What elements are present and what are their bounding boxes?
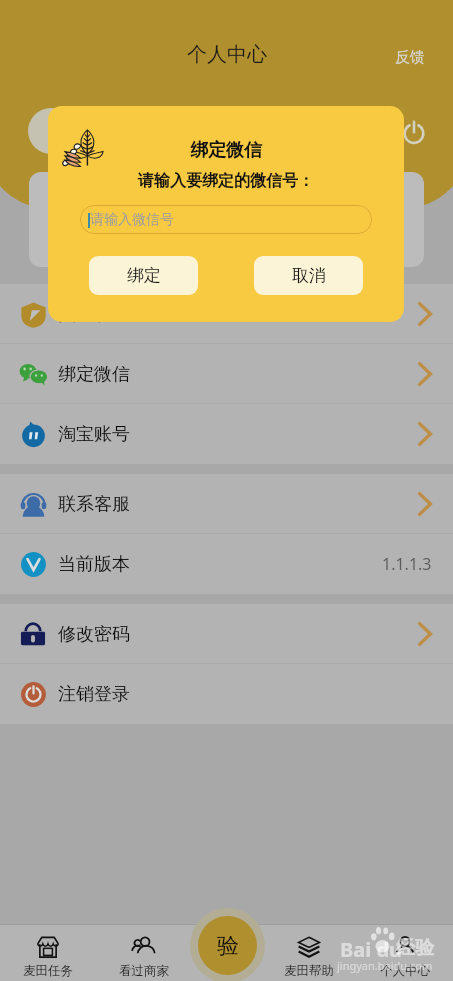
button[interactable]: 当前版本 [0,534,453,594]
button[interactable]: 请输入微信号 [80,205,372,234]
staticText: 修改密码 [58,623,130,646]
staticText: 验 [217,932,239,960]
button[interactable]: 注销登录 [0,664,453,724]
staticText: Bai du [340,936,403,963]
staticText: 绑定微信 [190,139,262,162]
staticText: 个人中心 [187,42,267,67]
button[interactable]: 淘宝账号 [0,404,453,464]
staticText: 请输入要绑定的微信号： [138,171,314,191]
button[interactable]: 联系客服 [0,474,453,534]
button[interactable]: 修改密码 [0,604,453,664]
staticText: 经验 [396,936,434,960]
button[interactable]: 看过商家 [96,924,192,981]
staticText: 麦田任务 [23,963,73,979]
staticText: 看过商家 [119,963,169,979]
staticText: 1.1.1.3 [382,553,432,575]
staticText: 当前版本 [58,553,130,576]
button[interactable]: 实名认证 [0,284,453,344]
staticText: 个人中心 [380,963,430,979]
staticText: 反馈 [395,48,425,67]
button[interactable]: Logout [401,120,427,146]
staticText: 请输入微信号 [90,211,174,229]
staticText: 联系客服 [58,493,130,516]
staticText: jingyan.baidu.com [337,958,433,973]
staticText: 取消 [292,265,326,286]
staticText: 麦田帮助 [284,963,334,979]
button[interactable]: 验 Verify [190,908,265,981]
button[interactable]: 个人中心 [357,924,453,981]
button[interactable]: 绑定 [89,256,198,295]
staticText: 绑定微信 [58,363,130,386]
button[interactable]: 麦田任务 [0,924,96,981]
staticText: 淘宝账号 [58,423,130,446]
staticText: 注销登录 [58,683,130,706]
button[interactable]: 反馈 [395,48,425,67]
staticText: 实名认证 [58,303,130,326]
button[interactable]: Avatar [28,108,74,154]
button[interactable]: 麦田帮助 [261,924,357,981]
staticText: 绑定 [127,265,161,286]
button[interactable]: 绑定微信 [0,344,453,404]
button[interactable]: 取消 [254,256,363,295]
